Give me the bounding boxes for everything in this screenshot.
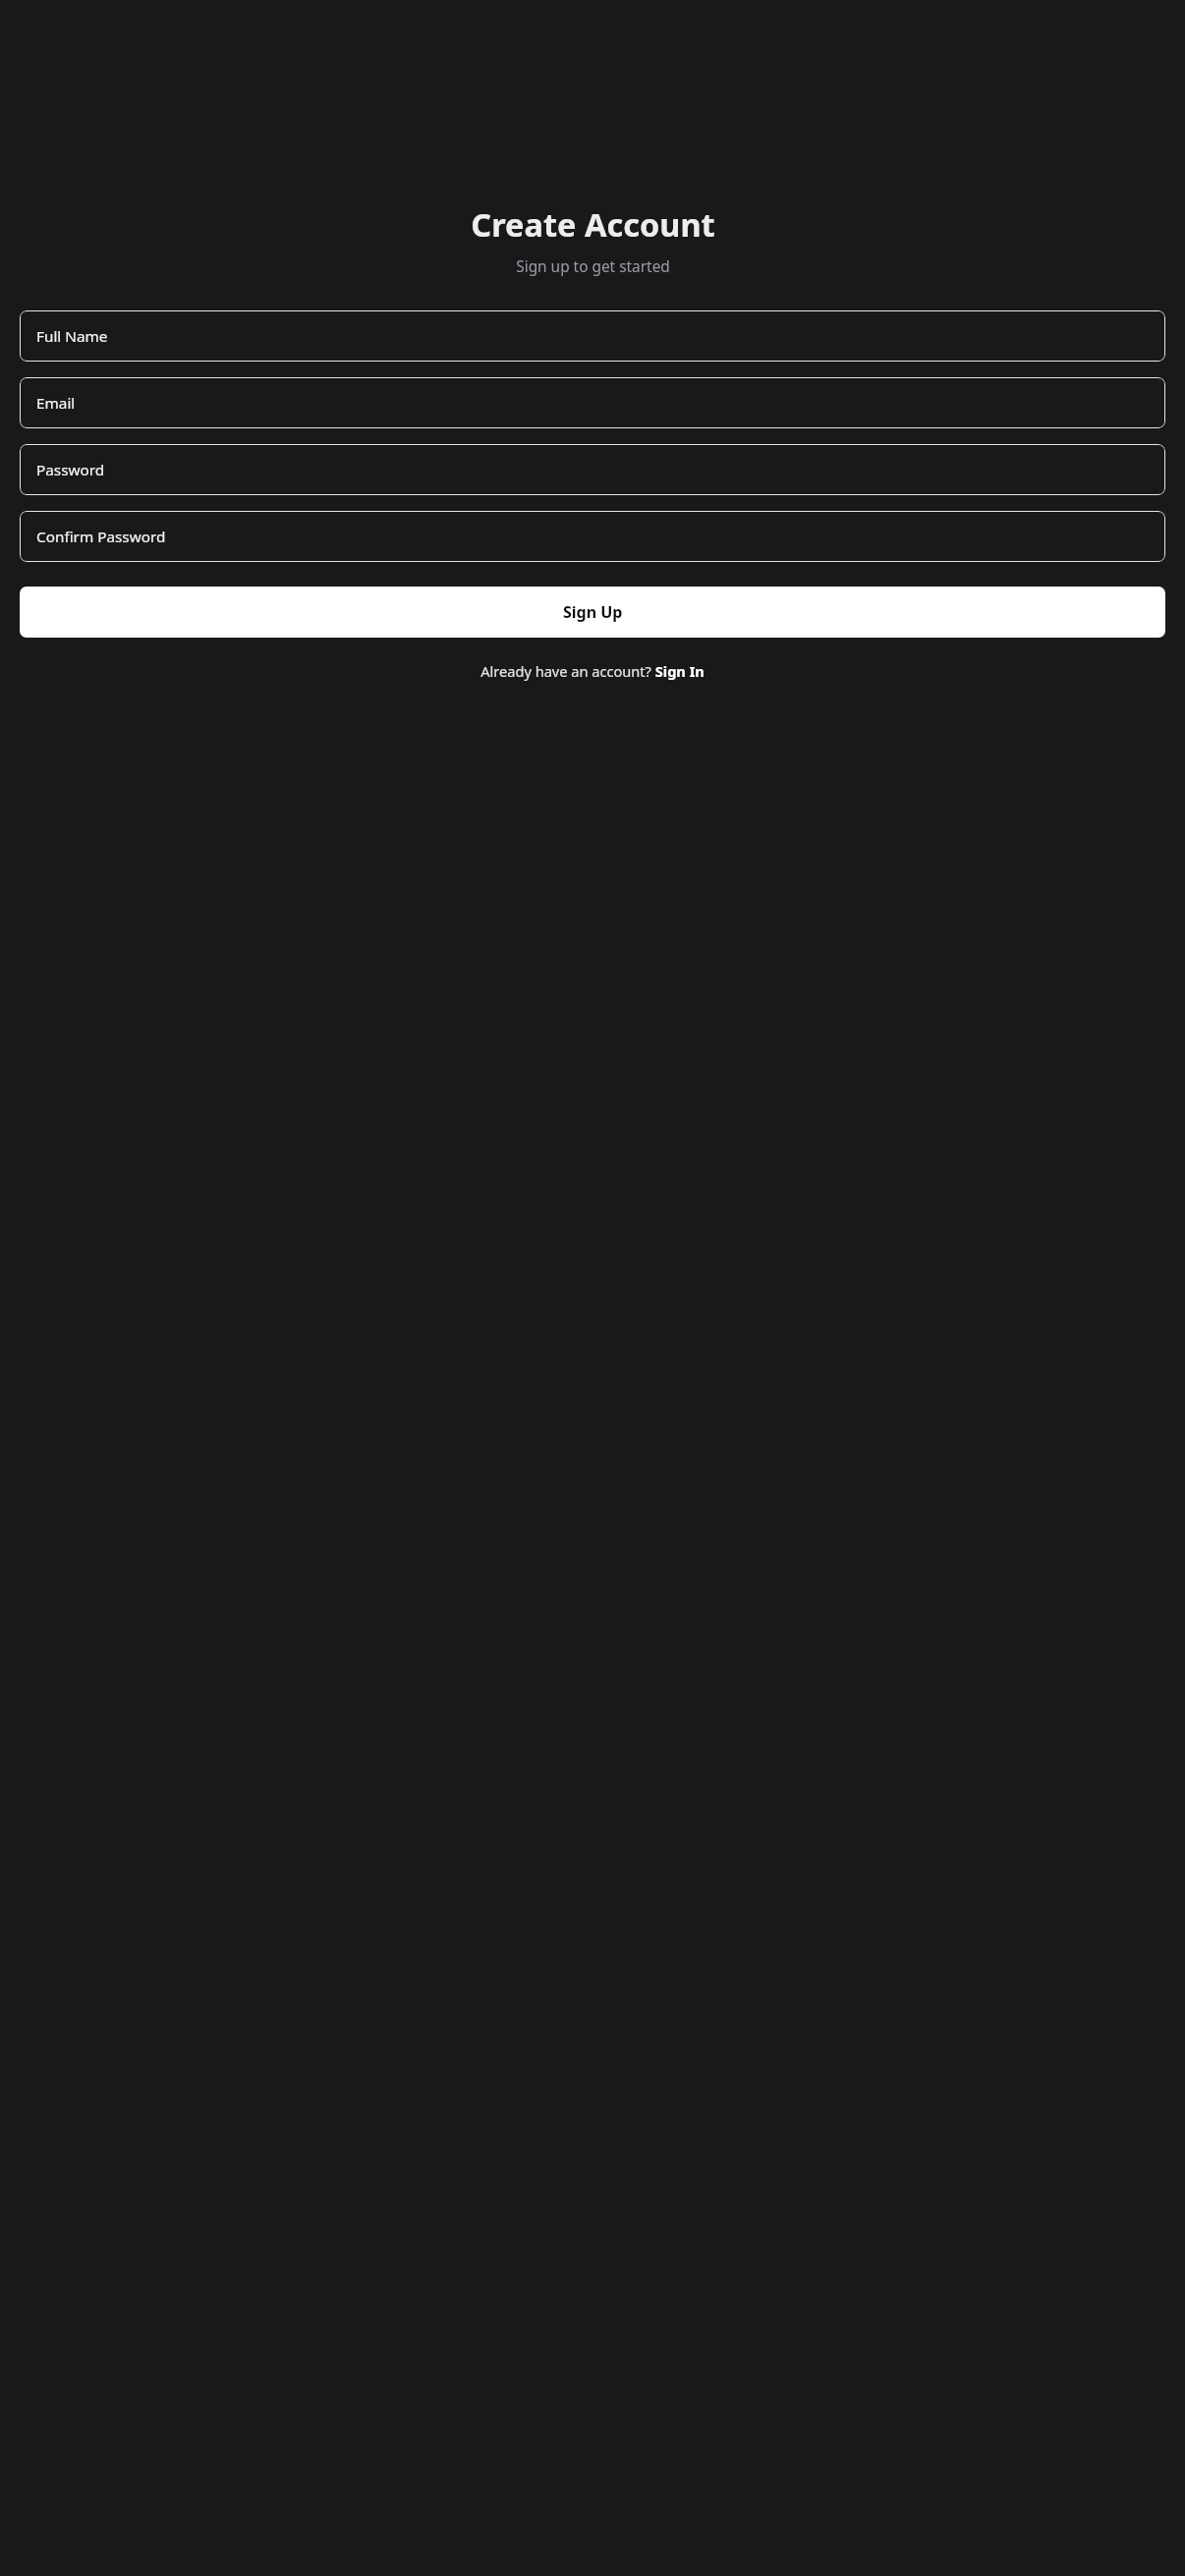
staticText: Sign Up (563, 601, 623, 623)
button[interactable]: Already have an account? Sign In (475, 657, 710, 685)
button[interactable]: Email (20, 377, 1165, 428)
staticText: Full Name (36, 326, 108, 347)
staticText: Confirm Password (36, 527, 166, 547)
staticText: Password (36, 460, 105, 480)
staticText: Email (36, 393, 76, 414)
button[interactable]: Password (20, 444, 1165, 495)
staticText: Create Account (471, 202, 715, 246)
staticText: Already have an account? Sign In (480, 661, 705, 681)
button[interactable]: Full Name (20, 310, 1165, 362)
staticText: Sign up to get started (516, 256, 670, 277)
button[interactable]: Sign Up (20, 587, 1165, 638)
button[interactable]: Confirm Password (20, 511, 1165, 562)
